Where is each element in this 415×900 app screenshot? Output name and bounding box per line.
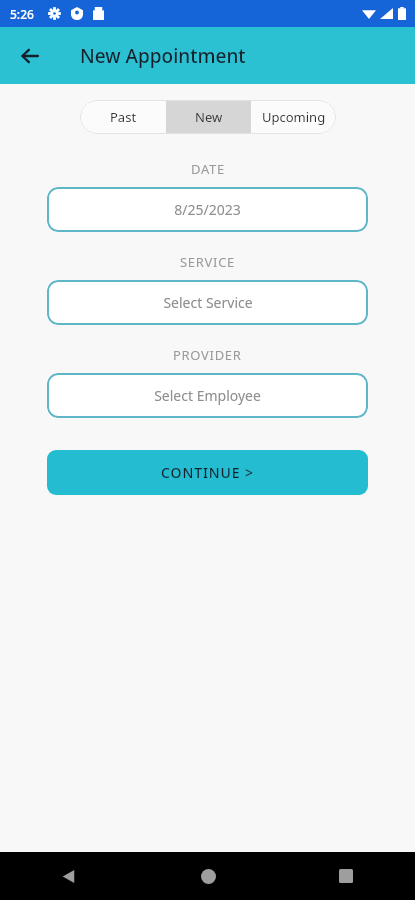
button[interactable]: Recent apps: [277, 852, 415, 900]
button[interactable]: 8/25/2023: [47, 187, 368, 232]
button[interactable]: Back: [0, 852, 139, 900]
button[interactable]: Home: [139, 852, 277, 900]
staticText: New Appointment: [80, 43, 246, 69]
staticText: Select Service: [163, 293, 253, 312]
button[interactable]: New: [166, 100, 251, 134]
staticText: 5:26: [10, 6, 34, 22]
staticText: PROVIDER: [173, 346, 242, 364]
button[interactable]: Select Employee: [47, 373, 368, 418]
staticText: 8/25/2023: [174, 200, 241, 219]
button[interactable]: CONTINUE >: [47, 450, 368, 495]
staticText: DATE: [191, 160, 225, 178]
button[interactable]: Upcoming: [251, 100, 336, 134]
staticText: Select Employee: [154, 386, 261, 405]
staticText: New: [195, 108, 223, 126]
staticText: CONTINUE >: [161, 463, 254, 482]
staticText: Past: [110, 108, 137, 126]
button[interactable]: Past: [80, 100, 166, 134]
staticText: Upcoming: [262, 108, 326, 126]
button[interactable]: Select Service: [47, 280, 368, 325]
staticText: SERVICE: [180, 253, 236, 271]
button[interactable]: Back: [10, 36, 50, 76]
